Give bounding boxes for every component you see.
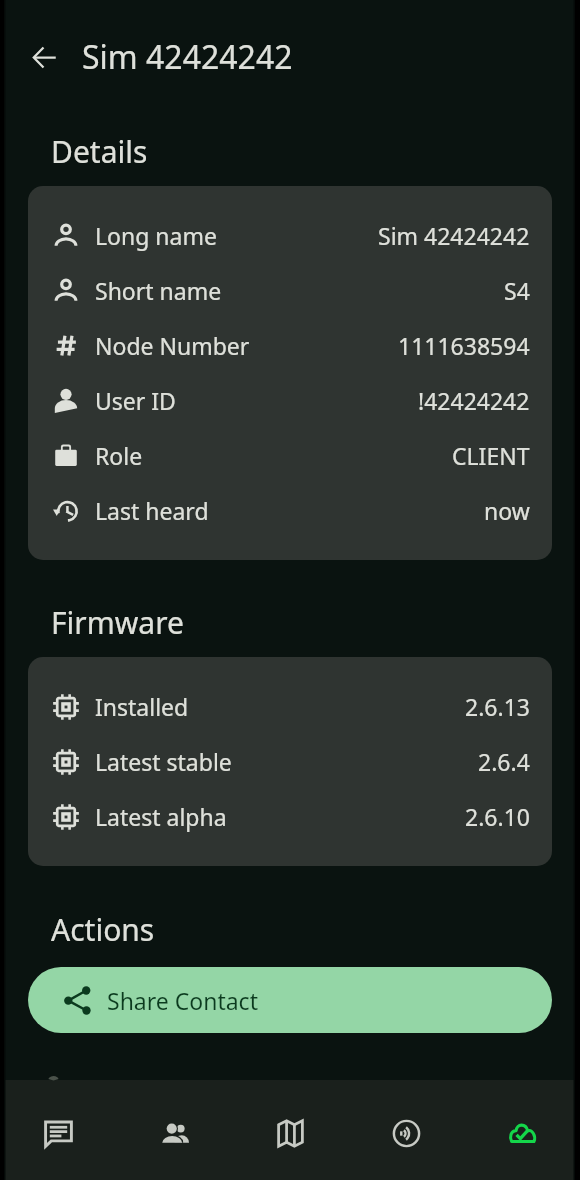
button[interactable]: Last heard — [28, 483, 552, 538]
staticText: 1111638594 — [398, 330, 530, 361]
button[interactable]: Channels — [348, 1080, 464, 1180]
staticText: Last heard — [95, 495, 209, 526]
staticText: Short name — [95, 275, 222, 306]
staticText: Latest stable — [95, 746, 232, 777]
staticText: Latest alpha — [95, 801, 227, 832]
staticText: now — [484, 495, 530, 526]
staticText: Node Number — [95, 330, 250, 361]
staticText: Sim 42424242 — [82, 35, 293, 79]
staticText: Sim 42424242 — [378, 220, 530, 251]
staticText: !42424242 — [418, 385, 530, 416]
staticText: Share Contact — [107, 985, 258, 1016]
button[interactable]: Contacts — [116, 1080, 232, 1180]
button[interactable]: Short name — [28, 263, 552, 318]
button[interactable]: Back — [22, 35, 66, 79]
staticText: Actions — [51, 909, 155, 950]
button[interactable]: Installed — [28, 679, 552, 734]
staticText: User ID — [95, 385, 176, 416]
staticText: Role — [95, 440, 143, 471]
staticText: Installed — [95, 691, 189, 722]
staticText: 2.6.13 — [465, 691, 530, 722]
staticText: 2.6.10 — [465, 801, 530, 832]
button[interactable]: Connection status — [464, 1080, 580, 1180]
button[interactable]: User ID — [28, 373, 552, 428]
button[interactable]: Share Contact — [28, 967, 552, 1033]
button[interactable]: Role — [28, 428, 552, 483]
button[interactable]: Latest alpha — [28, 789, 552, 844]
staticText: S4 — [504, 275, 530, 306]
staticText: CLIENT — [452, 440, 530, 471]
staticText: Details — [51, 131, 148, 172]
button[interactable]: Node Number — [28, 318, 552, 373]
button[interactable]: Map — [232, 1080, 348, 1180]
staticText: 2.6.4 — [478, 746, 530, 777]
button[interactable]: Long name — [28, 208, 552, 263]
staticText: Long name — [95, 220, 217, 251]
button[interactable]: Latest stable — [28, 734, 552, 789]
staticText: Firmware — [51, 602, 184, 643]
button[interactable]: Messages — [0, 1080, 116, 1180]
